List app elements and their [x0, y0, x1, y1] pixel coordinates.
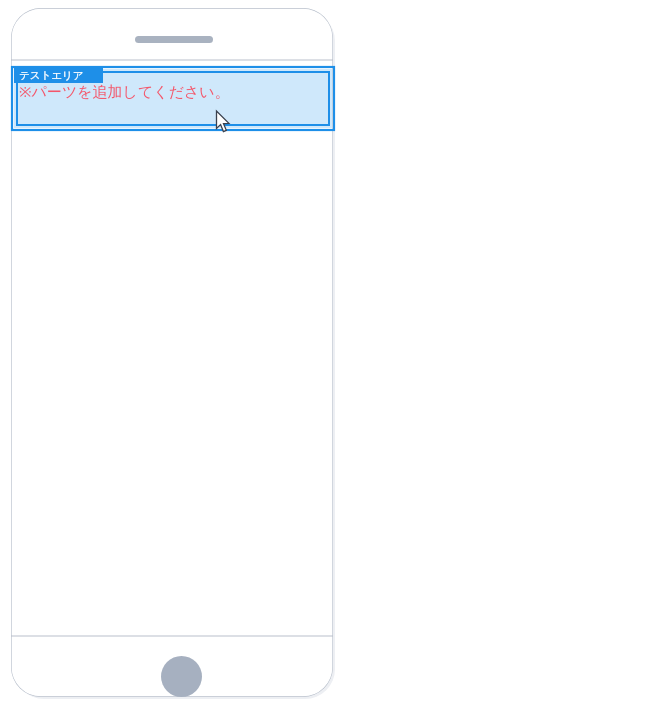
- staticText: ※パーツを追加してください。: [19, 81, 230, 101]
- button[interactable]: ※パーツを追加してください。: [12, 67, 334, 130]
- staticText: テストエリア: [19, 69, 84, 82]
- button[interactable]: テストエリア: [14, 68, 103, 83]
- button[interactable]: Home: [161, 656, 202, 697]
